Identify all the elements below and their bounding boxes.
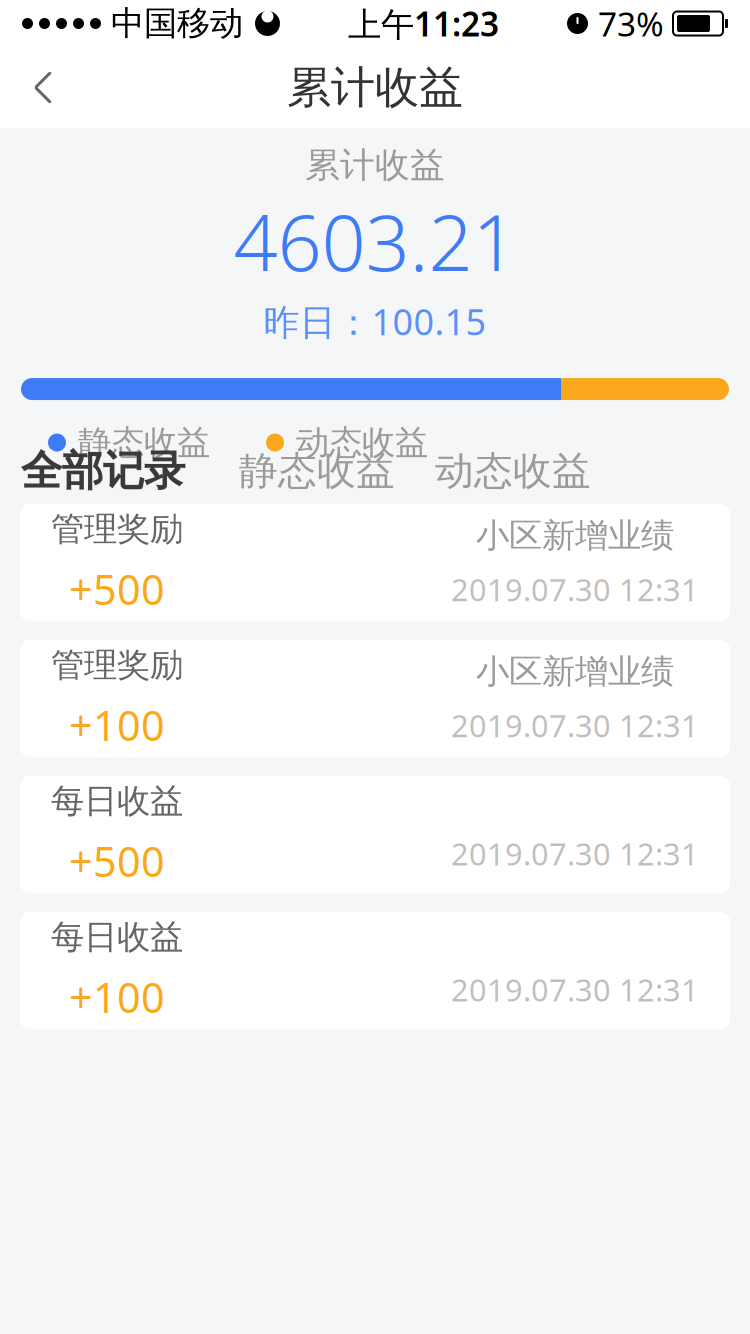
staticText: 管理奖励 [51,509,183,549]
staticText: +100 [69,969,165,1024]
button[interactable]: 全部记录 [21,446,185,496]
staticText: 中国移动 [111,3,243,44]
staticText: 2019.07.30 12:31 [451,705,699,746]
button[interactable]: 每日收益 [20,912,730,1029]
staticText: +500 [69,833,165,888]
button[interactable]: 管理奖励 [20,640,730,757]
staticText: 4603.21 [233,190,516,292]
staticText: 累计收益 [305,144,445,187]
staticText: 静态收益 [239,447,395,495]
staticText: 上午11:23 [348,1,499,46]
staticText: 2019.07.30 12:31 [451,969,699,1010]
staticText: +100 [69,697,165,752]
staticText: 静态收益 [78,422,210,463]
staticText: 管理奖励 [51,645,183,685]
staticText: 73% [598,1,664,46]
staticText: 小区新增业绩 [476,515,674,556]
staticText: 累计收益 [287,60,463,114]
staticText: 昨日：100.15 [263,297,486,345]
staticText: 小区新增业绩 [476,651,674,692]
button[interactable]: 每日收益 [20,776,730,893]
button[interactable]: 静态收益 [185,447,395,495]
staticText: 每日收益 [51,917,183,957]
button[interactable]: 动态收益 [395,447,591,495]
button[interactable]: 管理奖励 [20,504,730,621]
staticText: 每日收益 [51,781,183,821]
staticText: 动态收益 [435,447,591,495]
staticText: 2019.07.30 12:31 [451,569,699,610]
staticText: 2019.07.30 12:31 [451,833,699,874]
staticText: +500 [69,561,165,616]
button[interactable]: 返回 [12,56,74,118]
staticText: 全部记录 [21,446,185,496]
staticText: 动态收益 [296,422,428,463]
